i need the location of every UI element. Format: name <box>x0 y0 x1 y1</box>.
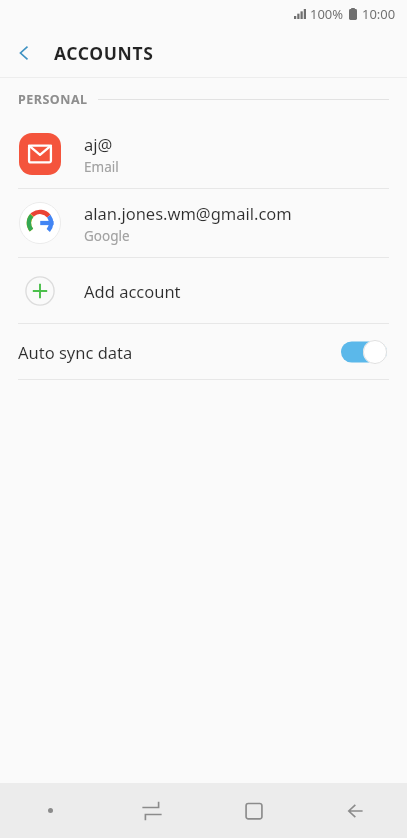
staticText: Email <box>84 158 119 176</box>
button[interactable]: aj@ <box>0 120 407 188</box>
button[interactable]: Add account <box>0 258 407 323</box>
staticText: 10:00 <box>362 5 396 23</box>
staticText: 100% <box>310 5 344 23</box>
button[interactable]: alan.jones.wm@gmail.com <box>0 189 407 257</box>
button[interactable]: Home <box>203 783 305 838</box>
staticText: ACCOUNTS <box>54 41 154 65</box>
button[interactable]: Back <box>305 783 407 838</box>
staticText: Add account <box>84 280 181 302</box>
staticText: Google <box>84 227 130 245</box>
staticText: aj@ <box>84 133 113 155</box>
button[interactable]: Back <box>0 29 48 77</box>
button[interactable]: Recent apps <box>101 783 203 838</box>
staticText: Auto sync data <box>18 341 133 363</box>
button[interactable]: Auto sync data <box>0 324 407 379</box>
staticText: alan.jones.wm@gmail.com <box>84 202 292 224</box>
staticText: PERSONAL <box>18 91 88 108</box>
